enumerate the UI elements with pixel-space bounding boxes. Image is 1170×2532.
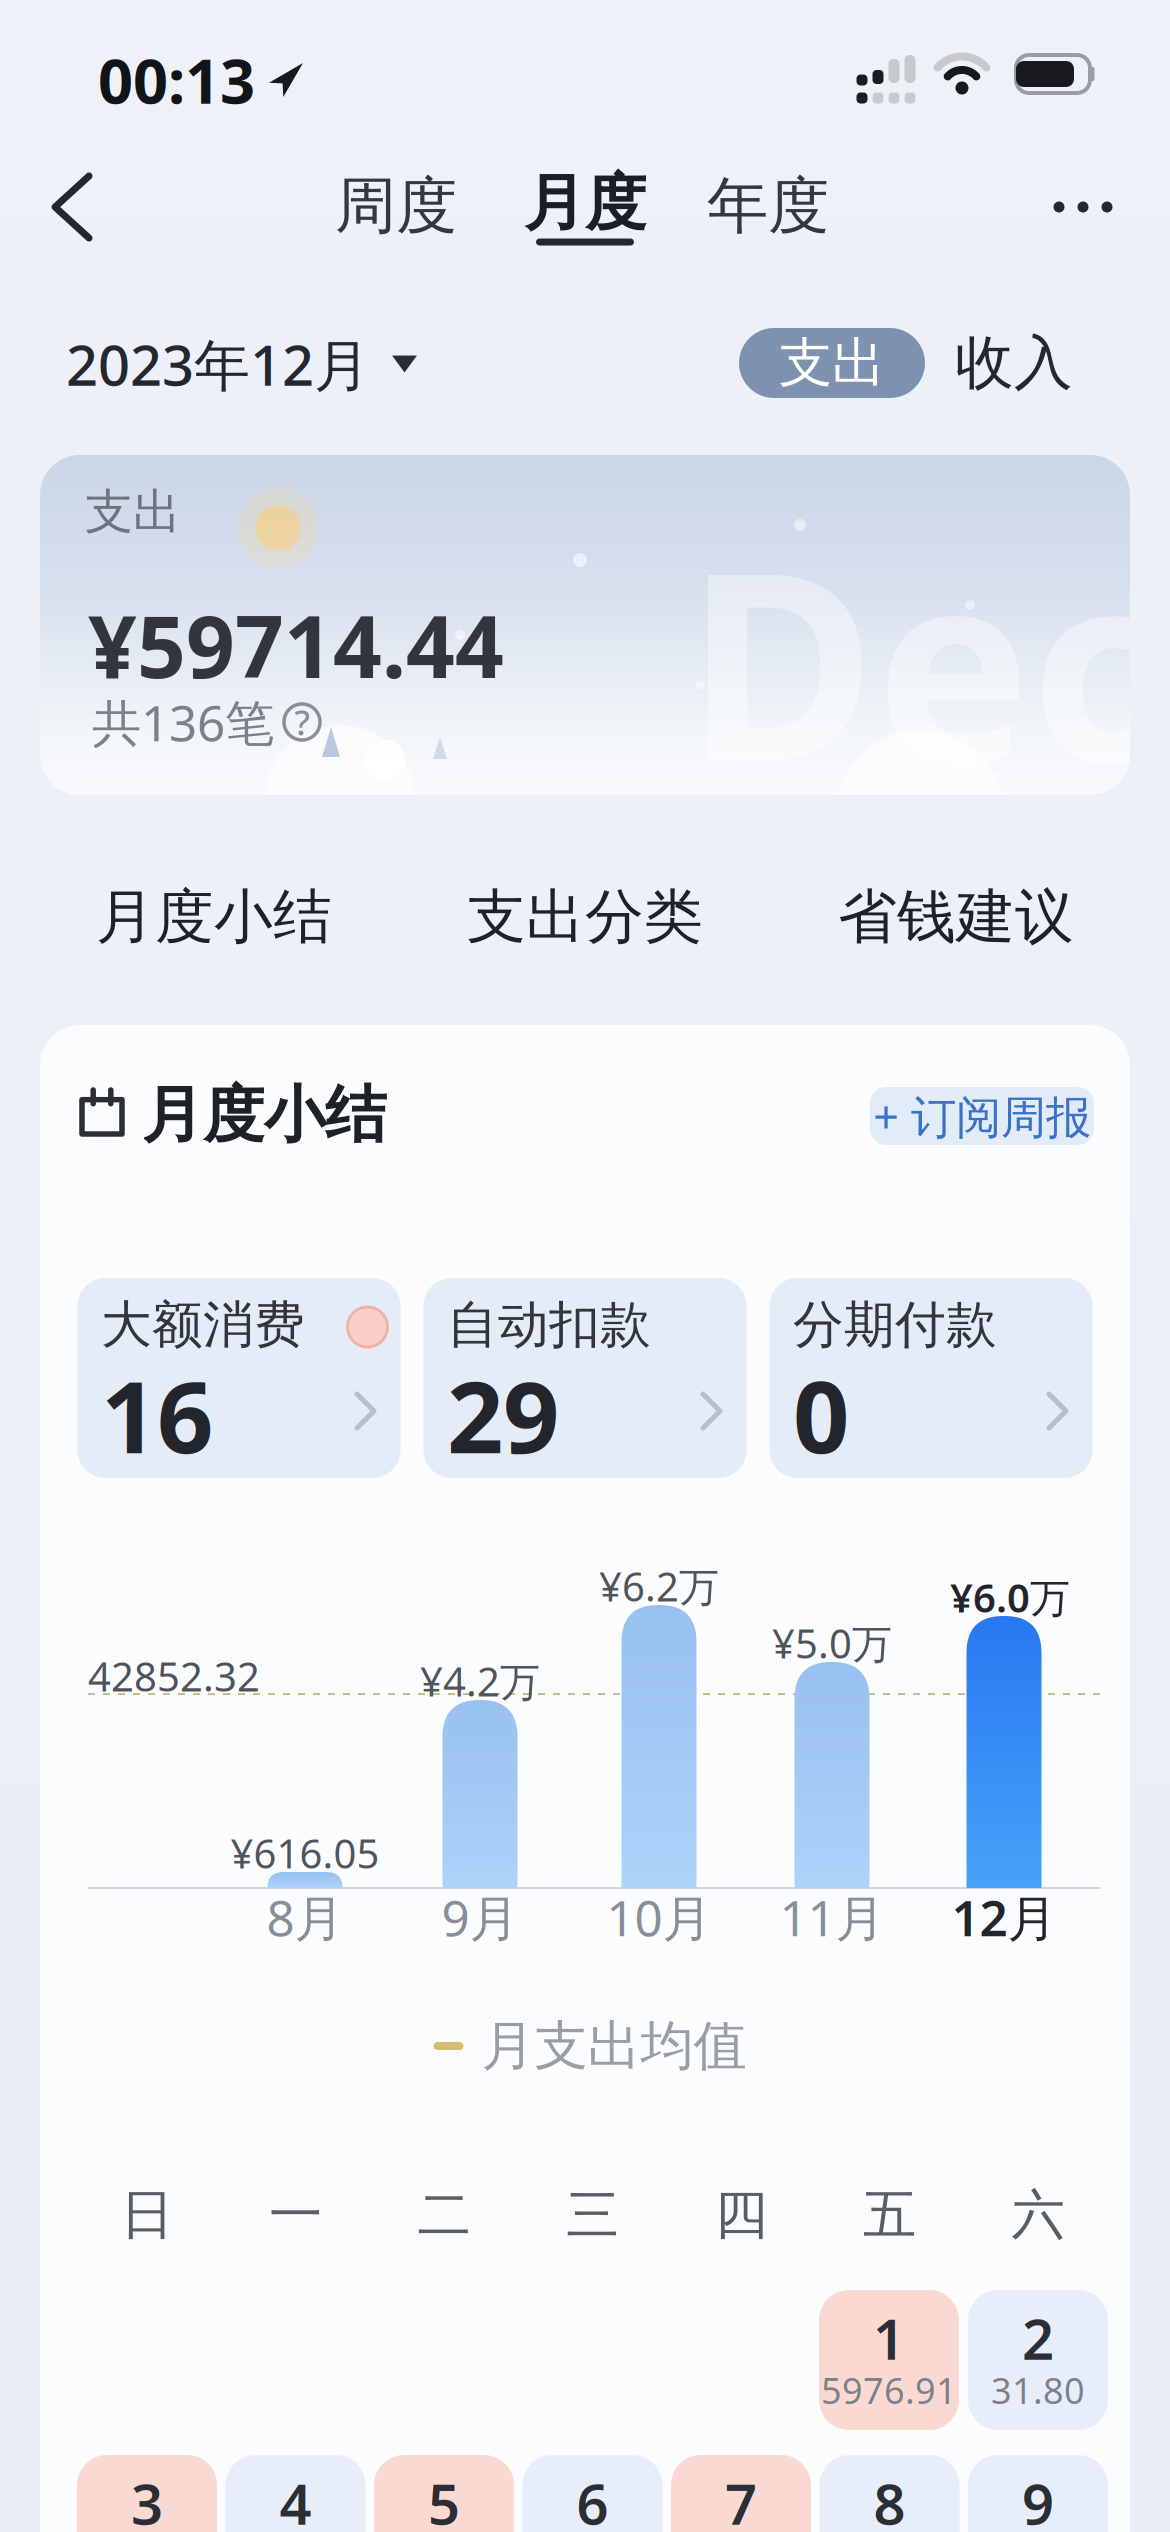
staticText: 31.80 <box>991 2366 1085 2414</box>
staticText: 六 <box>1011 2182 1064 2248</box>
staticText: 月度小结 <box>142 1077 386 1153</box>
button[interactable]: 月度 <box>515 163 655 249</box>
staticText: ¥59714.44 <box>88 588 504 702</box>
button[interactable]: 支出分类 <box>467 881 703 953</box>
staticText: 8月 <box>266 1884 343 1950</box>
staticText: ¥6.2万 <box>599 1559 719 1612</box>
staticText: 12月 <box>951 1884 1056 1950</box>
button[interactable]: 自动扣款 <box>423 1278 746 1478</box>
button[interactable]: 月度小结 <box>96 881 332 953</box>
staticText: 自动扣款 <box>447 1294 651 1356</box>
staticText: 1 <box>873 2301 905 2375</box>
button[interactable]: 收入 <box>955 317 1073 409</box>
staticText: 年度 <box>707 168 829 244</box>
button[interactable]: 分期付款 <box>769 1278 1092 1478</box>
staticText: 6 <box>576 2466 608 2532</box>
button[interactable]: More <box>1037 185 1128 228</box>
staticText: ¥6.0万 <box>950 1570 1070 1623</box>
staticText: 大额消费 <box>101 1294 305 1356</box>
button[interactable]: 3 <box>77 2455 217 2532</box>
staticText: 支出分类 <box>467 881 703 953</box>
button[interactable]: 年度 <box>707 168 829 244</box>
staticText: 二 <box>417 2182 470 2248</box>
button[interactable]: 5 <box>374 2455 514 2532</box>
staticText: ¥4.2万 <box>420 1654 540 1707</box>
staticText: Dec <box>685 487 1164 833</box>
staticText: 五 <box>863 2182 916 2248</box>
staticText: 4 <box>279 2466 311 2532</box>
staticText: 11月 <box>779 1884 884 1950</box>
button[interactable]: 支出 <box>739 328 925 398</box>
staticText: 10月 <box>606 1884 711 1950</box>
staticText: 7 <box>725 2466 757 2532</box>
staticText: 共136笔 <box>92 689 274 755</box>
staticText: 8 <box>873 2466 905 2532</box>
staticText: 9 <box>1022 2466 1054 2532</box>
staticText: 00:13 <box>98 39 255 121</box>
staticText: 月度小结 <box>96 881 332 953</box>
staticText: 9月 <box>441 1884 518 1950</box>
staticText: 3 <box>131 2466 163 2532</box>
staticText: 支出 <box>85 482 181 541</box>
button[interactable]: 周度 <box>335 168 457 244</box>
staticText: 0 <box>793 1349 849 1480</box>
staticText: 5976.91 <box>821 2366 957 2414</box>
button[interactable]: 7 <box>671 2455 811 2532</box>
staticText: 支出 <box>779 330 885 396</box>
staticText: 2 <box>1022 2301 1054 2375</box>
staticText: 三 <box>566 2182 619 2248</box>
staticText: 收入 <box>955 327 1073 399</box>
button[interactable]: 4 <box>225 2455 365 2532</box>
staticText: 省钱建议 <box>838 881 1074 953</box>
staticText: 16 <box>101 1349 213 1480</box>
staticText: + 订阅周报 <box>873 1086 1091 1146</box>
staticText: ? <box>294 699 309 745</box>
button[interactable]: 大额消费 <box>77 1278 400 1478</box>
staticText: 42852.32 <box>88 1649 260 1702</box>
staticText: ¥616.05 <box>230 1826 379 1879</box>
staticText: 2023年12月 <box>66 327 370 401</box>
button[interactable]: 9 <box>968 2455 1108 2532</box>
button[interactable]: 1 <box>819 2290 959 2430</box>
staticText: 一 <box>269 2182 322 2248</box>
button[interactable]: 2 <box>968 2290 1108 2430</box>
staticText: 5 <box>428 2466 460 2532</box>
button[interactable]: 6 <box>522 2455 662 2532</box>
staticText: 日 <box>120 2182 173 2248</box>
button[interactable]: Back <box>35 156 109 258</box>
staticText: 29 <box>447 1349 559 1480</box>
button[interactable]: 帮助 <box>280 700 324 744</box>
staticText: ¥5.0万 <box>772 1616 892 1669</box>
staticText: 分期付款 <box>793 1294 997 1356</box>
staticText: 周度 <box>335 168 457 244</box>
button[interactable]: + 订阅周报 <box>870 1087 1094 1145</box>
button[interactable]: 2023年12月 <box>66 319 417 409</box>
button[interactable]: 省钱建议 <box>838 881 1074 953</box>
staticText: 月度 <box>524 165 646 241</box>
staticText: 月支出均值 <box>481 2013 746 2079</box>
button[interactable]: 8 <box>819 2455 959 2532</box>
staticText: 四 <box>714 2182 767 2248</box>
